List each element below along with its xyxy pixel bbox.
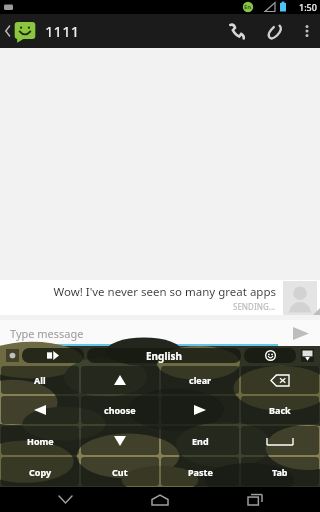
button[interactable]: More options <box>294 14 320 48</box>
staticText: Tab <box>272 466 288 478</box>
staticText: En <box>244 3 252 11</box>
button[interactable]: Back <box>0 15 39 47</box>
button[interactable]: Attach <box>256 14 294 48</box>
staticText: Paste <box>188 466 213 478</box>
button[interactable] <box>244 348 296 363</box>
button[interactable]: clear <box>161 366 239 394</box>
staticText: All <box>34 374 46 386</box>
staticText: choose <box>104 404 136 416</box>
button[interactable]: Down <box>81 426 159 455</box>
staticText: SENDING... <box>233 301 276 312</box>
button[interactable]: Space <box>241 426 319 455</box>
button[interactable]: Hide keyboard <box>35 487 95 512</box>
button[interactable]: Settings <box>2 347 22 364</box>
staticText: clear <box>189 374 212 386</box>
button[interactable]: Left <box>1 396 79 424</box>
button[interactable]: Call <box>218 14 256 48</box>
staticText: English <box>146 349 182 363</box>
staticText: Type message <box>10 326 84 341</box>
staticText: Home <box>27 435 54 447</box>
button[interactable]: English <box>87 348 241 363</box>
button[interactable]: choose <box>81 396 159 424</box>
staticText: Wow! I've never seen so many great apps <box>53 284 276 300</box>
button[interactable]: Send <box>282 320 320 346</box>
staticText: 1111 <box>45 21 80 41</box>
staticText: Copy <box>29 466 52 478</box>
staticText: Cut <box>112 466 128 478</box>
button[interactable]: Home <box>130 487 190 512</box>
button[interactable]: All <box>1 366 79 394</box>
staticText: End <box>192 435 209 447</box>
button[interactable]: Paste <box>161 457 239 486</box>
button[interactable]: Home <box>1 426 79 455</box>
button[interactable]: Back <box>241 396 319 424</box>
button[interactable]: Copy <box>1 457 79 486</box>
button[interactable]: Cut <box>81 457 159 486</box>
staticText: Back <box>269 404 291 416</box>
button[interactable] <box>22 348 84 363</box>
button[interactable]: End <box>161 426 239 455</box>
button[interactable]: Backspace <box>241 366 319 394</box>
button[interactable]: Wow! I've never seen so many great apps <box>0 280 320 315</box>
button[interactable]: Right <box>161 396 239 424</box>
button[interactable]: Type message <box>10 320 278 346</box>
button[interactable]: Up <box>81 366 159 394</box>
button[interactable]: Tab <box>241 457 319 486</box>
staticText: 1:50 <box>299 1 317 13</box>
button[interactable]: Recent apps <box>225 487 285 512</box>
button[interactable]: Hide keyboard <box>296 347 318 364</box>
